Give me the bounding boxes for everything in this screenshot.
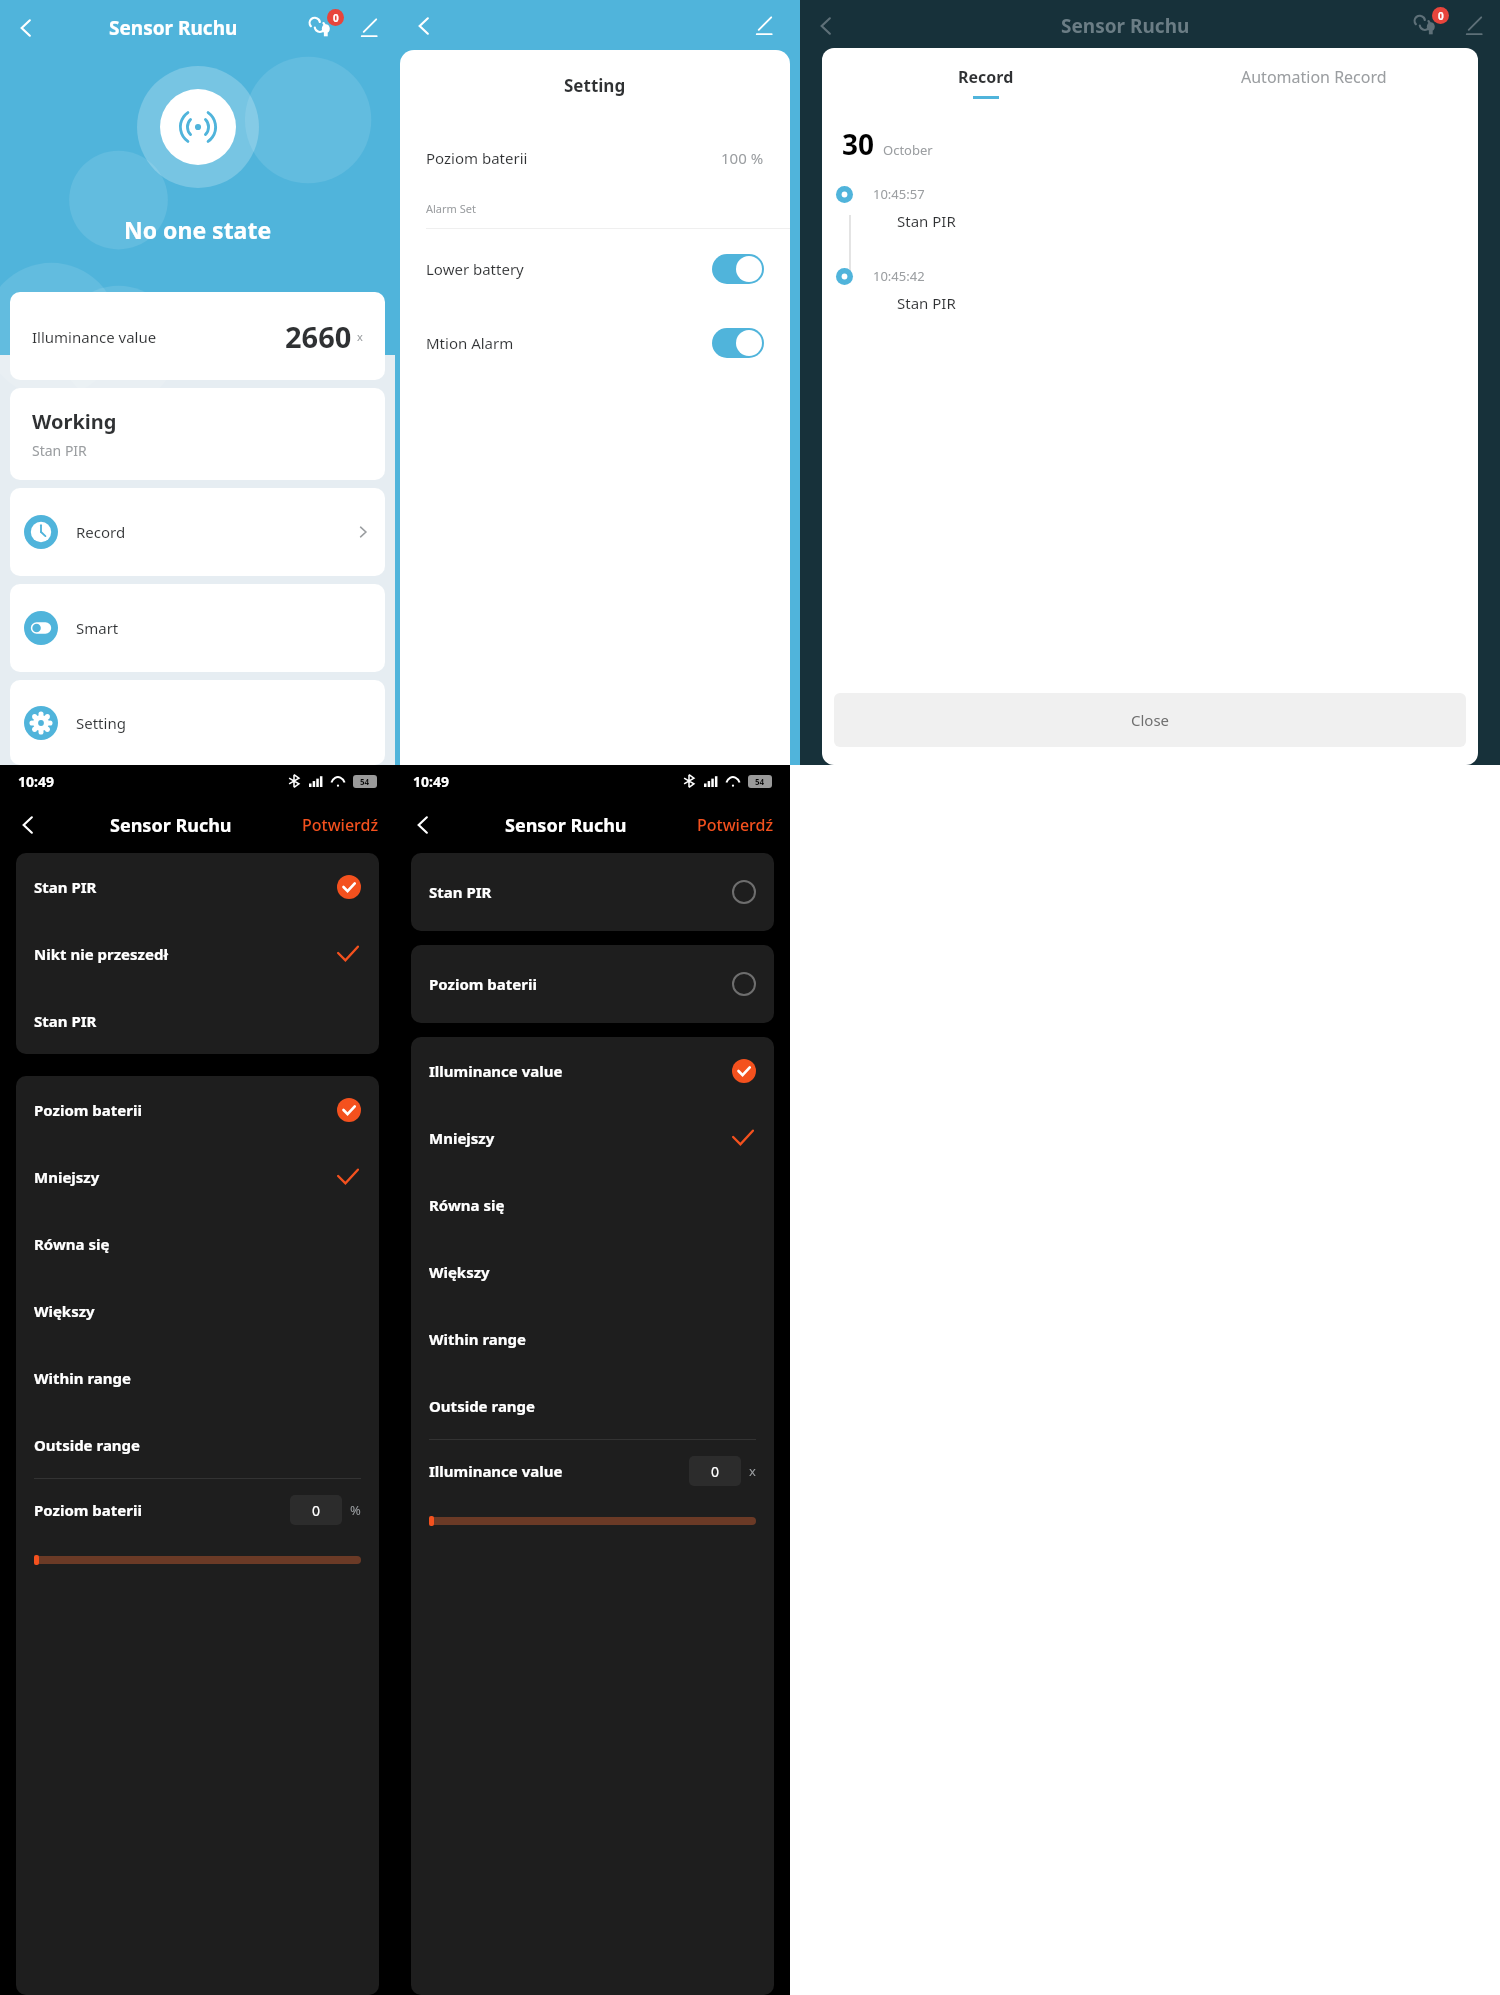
other: Back [412, 14, 436, 38]
staticText: No one state [124, 214, 272, 245]
staticText: Record [958, 66, 1014, 88]
button[interactable]: Outside range [16, 1411, 379, 1478]
button[interactable]: Close [834, 693, 1466, 747]
staticText: Sensor Ruchu [109, 15, 238, 41]
button[interactable]: Linked devices [1414, 10, 1446, 42]
staticText: Illuminance value [32, 327, 157, 347]
button[interactable]: Stan PIR [16, 853, 379, 920]
staticText: Sensor Ruchu [505, 813, 627, 838]
staticText: 2660 [285, 317, 352, 356]
staticText: Working [32, 408, 117, 435]
button[interactable]: Smart [10, 584, 385, 672]
button[interactable]: Edit [752, 14, 776, 38]
button[interactable]: Within range [16, 1344, 379, 1411]
staticText: Illuminance value [429, 1061, 563, 1081]
button[interactable]: Poziom baterii [411, 945, 774, 1023]
staticText: 100 % [721, 148, 764, 168]
other: Edit [357, 16, 381, 40]
button[interactable]: Stan PIR [411, 853, 774, 931]
staticText: 30 [842, 125, 875, 163]
button[interactable]: Working [10, 388, 385, 480]
button[interactable]: Potwierdź [302, 814, 379, 836]
button[interactable]: Mniejszy [16, 1143, 379, 1210]
button[interactable]: Back [814, 14, 838, 38]
staticText: Stan PIR [34, 1011, 97, 1031]
staticText: Potwierdź [697, 814, 774, 836]
staticText: Nikt nie przeszedł [34, 944, 168, 964]
staticText: Mniejszy [429, 1128, 495, 1148]
other: Back [814, 14, 838, 38]
button[interactable]: Mtion Alarm [400, 321, 790, 365]
staticText: Potwierdź [302, 814, 379, 836]
staticText: Równa się [34, 1234, 110, 1254]
button[interactable]: Outside range [411, 1372, 774, 1439]
staticText: 10:45:42 [873, 267, 925, 285]
button[interactable]: Back [14, 16, 38, 40]
button[interactable]: Record [822, 66, 1150, 99]
button[interactable] [712, 328, 764, 358]
other: Edit [1462, 14, 1486, 38]
other: Back [14, 16, 38, 40]
button[interactable]: Back [411, 813, 435, 837]
button[interactable] [712, 254, 764, 284]
staticText: 0 [312, 1501, 321, 1520]
staticText: Stan PIR [34, 877, 97, 897]
staticText: 0 [1438, 9, 1444, 23]
button[interactable]: Record [10, 488, 385, 576]
button[interactable]: Within range [411, 1305, 774, 1372]
staticText: 54 [755, 776, 765, 787]
staticText: x [357, 329, 363, 344]
staticText: Poziom baterii [426, 148, 528, 168]
staticText: 10:45:57 [873, 185, 925, 203]
staticText: Automation Record [1241, 66, 1387, 88]
button[interactable]: Poziom baterii [16, 1076, 379, 1143]
staticText: 0 [711, 1462, 720, 1481]
staticText: Poziom baterii [34, 1100, 142, 1120]
staticText: Within range [429, 1329, 526, 1349]
button[interactable]: Illuminance value [10, 292, 385, 380]
button[interactable]: Back [412, 14, 436, 38]
button[interactable]: Illuminance value [411, 1037, 774, 1104]
staticText: Record [76, 522, 126, 542]
button[interactable]: Stan PIR [16, 987, 379, 1054]
button[interactable]: Back [16, 813, 40, 837]
staticText: 10:49 [413, 772, 449, 791]
staticText: Większy [34, 1301, 95, 1321]
staticText: Stan PIR [897, 211, 956, 231]
staticText: 54 [360, 776, 370, 787]
staticText: Outside range [429, 1396, 536, 1416]
staticText: Illuminance value [429, 1461, 563, 1481]
staticText: Sensor Ruchu [1061, 13, 1190, 39]
button[interactable]: Linked devices [309, 12, 341, 44]
button[interactable]: Automation Record [1150, 66, 1478, 88]
staticText: Poziom baterii [429, 974, 537, 994]
staticText: Mtion Alarm [426, 333, 514, 353]
button[interactable]: Edit [1462, 14, 1486, 38]
staticText: Setting [76, 713, 126, 733]
staticText: Smart [76, 618, 119, 638]
staticText: Close [1131, 710, 1170, 730]
staticText: Stan PIR [897, 293, 956, 313]
button[interactable]: Równa się [411, 1171, 774, 1238]
other: Back [411, 813, 435, 837]
button[interactable]: Edit [357, 16, 381, 40]
button[interactable]: Poziom baterii [400, 137, 790, 179]
staticText: Outside range [34, 1435, 141, 1455]
button[interactable]: Większy [16, 1277, 379, 1344]
staticText: Stan PIR [32, 441, 87, 460]
staticText: Większy [429, 1262, 490, 1282]
staticText: Mniejszy [34, 1167, 100, 1187]
button[interactable]: Równa się [16, 1210, 379, 1277]
button[interactable]: Większy [411, 1238, 774, 1305]
button[interactable]: Lower battery [400, 247, 790, 291]
button[interactable]: Setting [10, 680, 385, 765]
staticText: Within range [34, 1368, 131, 1388]
button[interactable]: Potwierdź [697, 814, 774, 836]
other: Linked devices [1414, 10, 1446, 42]
other: Back [16, 813, 40, 837]
staticText: 10:49 [18, 772, 54, 791]
button[interactable]: Mniejszy [411, 1104, 774, 1171]
staticText: Stan PIR [429, 882, 492, 902]
button[interactable]: Nikt nie przeszedł [16, 920, 379, 987]
staticText: % [350, 1501, 361, 1519]
